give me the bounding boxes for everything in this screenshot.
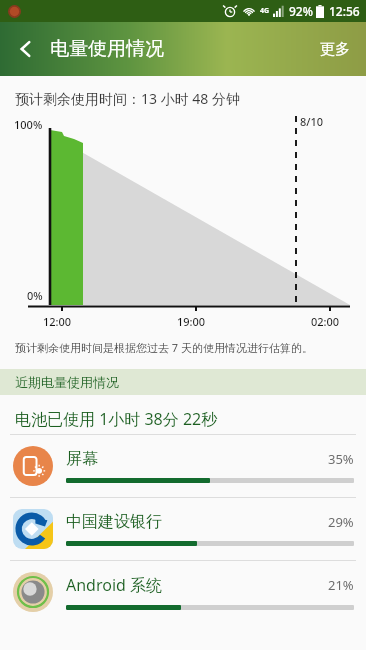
- staticText: 29%: [328, 513, 354, 531]
- staticText: 8/10: [300, 114, 324, 129]
- button[interactable]: 返回: [6, 29, 46, 69]
- staticText: 92%: [289, 3, 313, 19]
- staticText: 4G: [260, 6, 270, 16]
- staticText: 中国建设银行: [66, 512, 328, 532]
- staticText: 电量使用情况: [50, 37, 164, 61]
- staticText: 屏幕: [66, 449, 328, 469]
- staticText: 预计剩余使用时间：13 小时 48 分钟: [15, 89, 240, 108]
- button[interactable]: 更多: [314, 32, 356, 67]
- staticText: 100%: [14, 117, 43, 132]
- staticText: 近期电量使用情况: [15, 374, 119, 390]
- button[interactable]: Android 系统: [0, 561, 366, 623]
- staticText: 12:56: [329, 3, 360, 19]
- button[interactable]: 屏幕: [0, 435, 366, 497]
- staticText: 12:00: [43, 314, 72, 329]
- staticText: 02:00: [311, 314, 340, 329]
- staticText: 0%: [27, 288, 43, 303]
- staticText: 21%: [328, 576, 354, 594]
- staticText: 电池已使用 1小时 38分 22秒: [15, 408, 218, 430]
- staticText: Android 系统: [66, 574, 328, 596]
- staticText: 预计剩余使用时间是根据您过去 7 天的使用情况进行估算的。: [15, 340, 314, 355]
- button[interactable]: 中国建设银行: [0, 498, 366, 560]
- staticText: 35%: [328, 450, 354, 468]
- staticText: 更多: [320, 40, 350, 59]
- staticText: 19:00: [177, 314, 206, 329]
